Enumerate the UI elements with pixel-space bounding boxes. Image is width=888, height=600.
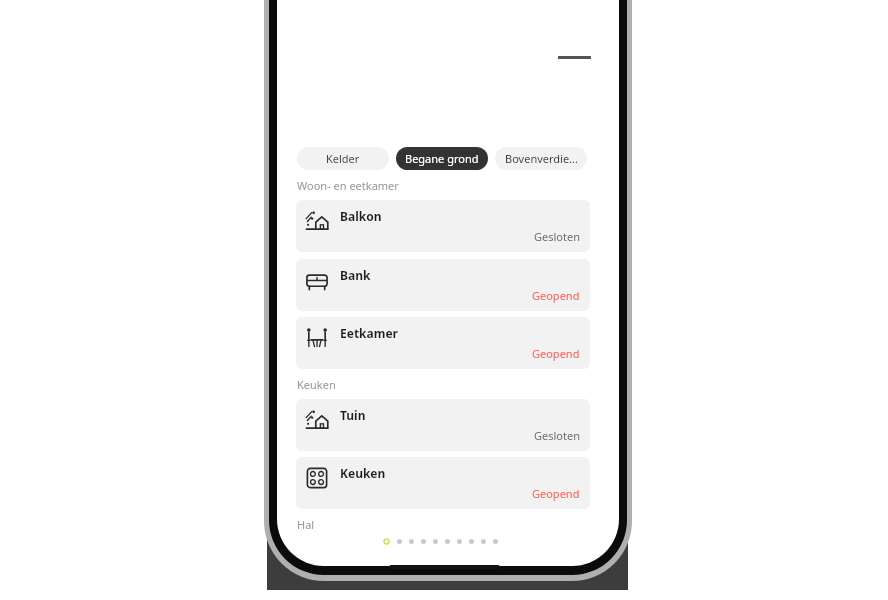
button[interactable]: Kelder [297, 147, 389, 170]
staticText: Geopend [532, 288, 580, 303]
button[interactable]: Stove [296, 457, 590, 509]
other: Couch [305, 268, 329, 292]
staticText: Tuin [340, 407, 366, 423]
staticText: Hal [297, 517, 315, 532]
staticText: Keuken [340, 465, 386, 481]
staticText: Bank [340, 267, 371, 283]
other: Balcony [305, 408, 329, 432]
button[interactable]: Balcony [296, 399, 590, 451]
staticText: Gesloten [534, 229, 580, 244]
button[interactable]: Couch [296, 259, 590, 311]
staticText: Geopend [532, 486, 580, 501]
button[interactable]: Balcony [296, 200, 590, 252]
button[interactable]: Bovenverdie... [495, 147, 587, 170]
staticText: Begane grond [405, 151, 479, 166]
staticText: Kelder [326, 151, 360, 166]
other: Stove [305, 466, 329, 490]
staticText: Woon- en eetkamer [297, 178, 399, 193]
staticText: Geopend [532, 346, 580, 361]
other: Balcony [305, 209, 329, 233]
button[interactable]: Dining table [296, 317, 590, 369]
staticText: Gesloten [534, 428, 580, 443]
staticText: Balkon [340, 208, 382, 224]
button[interactable]: Begane grond [396, 147, 488, 170]
staticText: Eetkamer [340, 325, 398, 341]
staticText: Keuken [297, 377, 336, 392]
other: Dining table [305, 326, 329, 350]
staticText: Bovenverdie... [505, 151, 578, 166]
